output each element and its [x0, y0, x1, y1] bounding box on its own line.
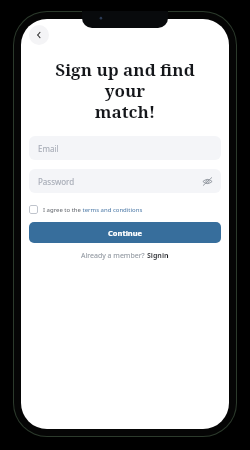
button[interactable]: Password: [29, 169, 221, 193]
button[interactable]: Email: [29, 136, 221, 160]
staticText: Already a member?: [81, 251, 147, 261]
button[interactable]: Continue: [29, 222, 221, 243]
staticText: Sign up and find your match!: [33, 58, 217, 123]
staticText: Signin: [147, 251, 169, 261]
button[interactable]: Toggle password visibility: [201, 175, 213, 187]
staticText: Email: [38, 143, 59, 154]
button[interactable]: Back: [29, 25, 49, 45]
staticText: I agree to the terms and conditions: [43, 206, 143, 214]
button[interactable]: I agree to the terms and conditions: [29, 205, 221, 214]
button[interactable]: Already a member?: [81, 251, 169, 261]
staticText: Password: [38, 176, 75, 187]
staticText: Continue: [108, 228, 143, 238]
